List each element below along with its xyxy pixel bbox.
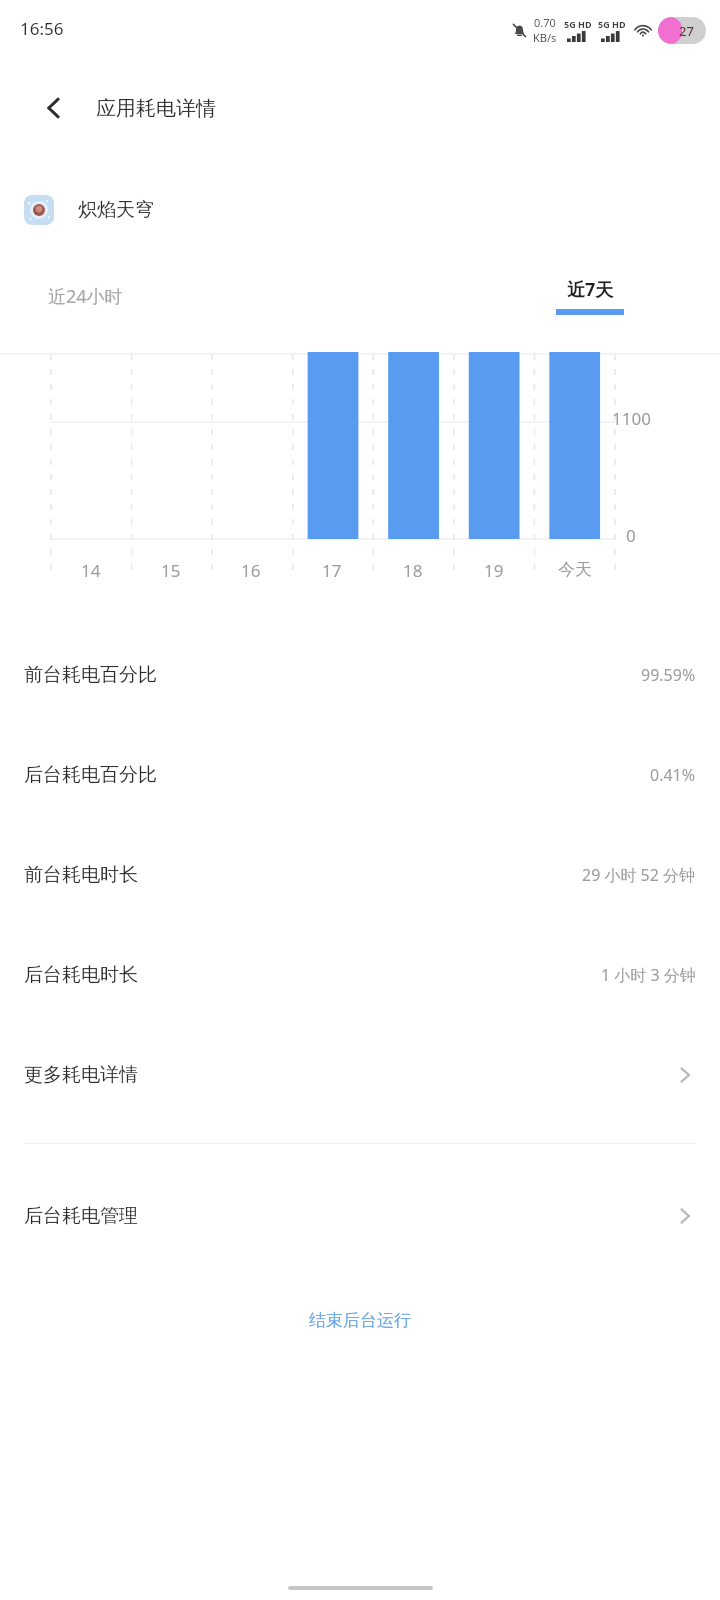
staticText: 前台耗电百分比	[24, 663, 157, 687]
button[interactable]: 近24小时	[48, 284, 123, 309]
staticText: 1100	[612, 407, 651, 430]
staticText: 结束后台运行	[309, 1310, 411, 1331]
staticText: 16:56	[20, 17, 64, 40]
button[interactable]: 后台耗电百分比	[0, 725, 720, 825]
button[interactable]: 更多耗电详情	[0, 1025, 720, 1125]
staticText: 17	[322, 559, 342, 582]
staticText: 99.59%	[641, 664, 696, 686]
staticText: 15	[161, 559, 181, 582]
button[interactable]: 结束后台运行	[0, 1292, 720, 1348]
staticText: 后台耗电百分比	[24, 763, 157, 787]
staticText: 0	[626, 524, 636, 547]
staticText: 更多耗电详情	[24, 1063, 138, 1087]
staticText: 16	[241, 559, 261, 582]
staticText: 近24小时	[48, 284, 123, 309]
staticText: 29 小时 52 分钟	[582, 864, 696, 886]
staticText: 27	[679, 22, 694, 40]
staticText: 今天	[558, 559, 592, 580]
staticText: 18	[403, 559, 423, 582]
staticText: 0.70	[534, 15, 556, 30]
staticText: 1 小时 3 分钟	[601, 964, 696, 986]
staticText: 近7天	[567, 277, 614, 302]
button[interactable]: 返回	[28, 82, 80, 134]
button[interactable]: 近7天	[556, 277, 624, 315]
button[interactable]: 后台耗电管理	[0, 1166, 720, 1266]
staticText: 后台耗电时长	[24, 963, 138, 987]
staticText: 14	[81, 559, 101, 582]
button[interactable]: 前台耗电百分比	[0, 625, 720, 725]
staticText: KB/s	[533, 30, 557, 45]
staticText: 5G HD	[598, 18, 626, 30]
staticText: 炽焰天穹	[78, 198, 154, 222]
button[interactable]: 前台耗电时长	[0, 825, 720, 925]
staticText: 0.41%	[650, 764, 696, 786]
staticText: 应用耗电详情	[96, 96, 216, 121]
staticText: 前台耗电时长	[24, 863, 138, 887]
button[interactable]: 后台耗电时长	[0, 925, 720, 1025]
staticText: 19	[484, 559, 504, 582]
staticText: 5G HD	[564, 18, 592, 30]
staticText: 后台耗电管理	[24, 1204, 138, 1228]
